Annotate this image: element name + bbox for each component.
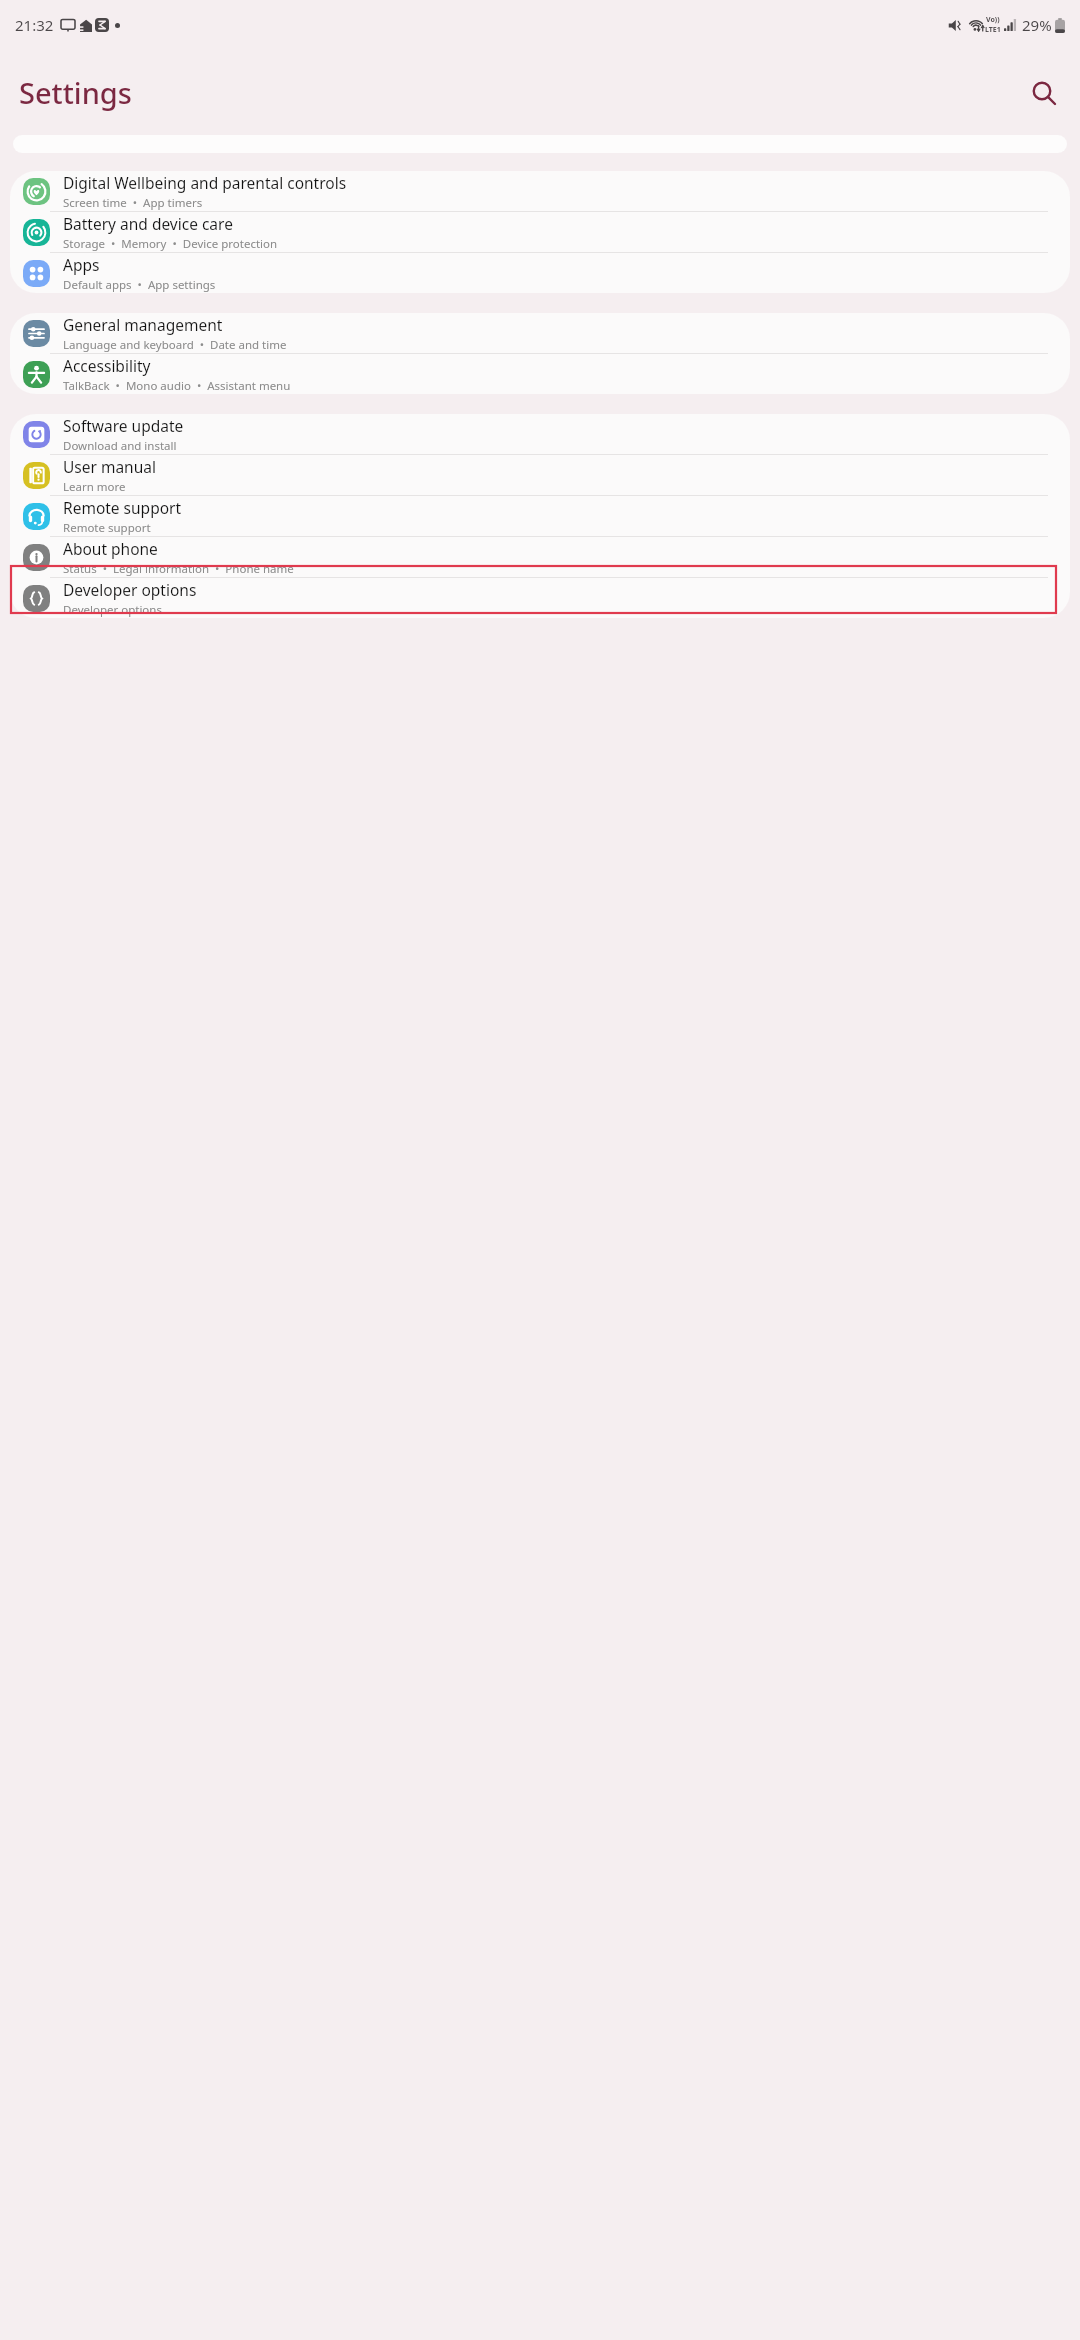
staticText: Download and install [63,438,177,454]
staticText: About phone [63,538,158,559]
button[interactable]: Software update [10,414,1070,454]
button[interactable]: Remote support [10,496,1070,536]
button[interactable]: General management [10,313,1070,353]
staticText: Status • Legal information • Phone name [63,561,294,577]
staticText: Learn more [63,479,126,495]
staticText: Digital Wellbeing and parental controls [63,172,347,193]
staticText: Storage • Memory • Device protection [63,236,278,252]
staticText: 29% [1022,15,1052,35]
button[interactable]: Accessibility [10,354,1070,394]
staticText: User manual [63,456,156,477]
button[interactable]: Battery and device care [10,212,1070,252]
button[interactable]: User manual [10,455,1070,495]
staticText: TalkBack • Mono audio • Assistant menu [63,378,291,394]
staticText: 21:32 [15,15,54,35]
staticText: LTE1 [985,25,1001,35]
staticText: Accessibility [63,355,151,376]
staticText: Vo)) [986,15,1000,25]
staticText: Default apps • App settings [63,277,216,293]
staticText: Remote support [63,520,151,536]
staticText: General management [63,314,223,335]
button[interactable]: Digital Wellbeing and parental controls [10,171,1070,211]
button[interactable]: Apps [10,253,1070,293]
staticText: Settings [19,73,132,112]
staticText: Software update [63,415,184,436]
staticText: Battery and device care [63,213,233,234]
staticText: Language and keyboard • Date and time [63,337,287,353]
staticText: Developer options [63,579,197,600]
button[interactable]: Search [1022,71,1066,115]
button[interactable]: Developer options [10,578,1070,618]
staticText: Screen time • App timers [63,195,203,211]
staticText: Apps [63,254,100,275]
staticText: Developer options [63,602,162,618]
staticText: Remote support [63,497,182,518]
button[interactable]: About phone [10,537,1070,577]
